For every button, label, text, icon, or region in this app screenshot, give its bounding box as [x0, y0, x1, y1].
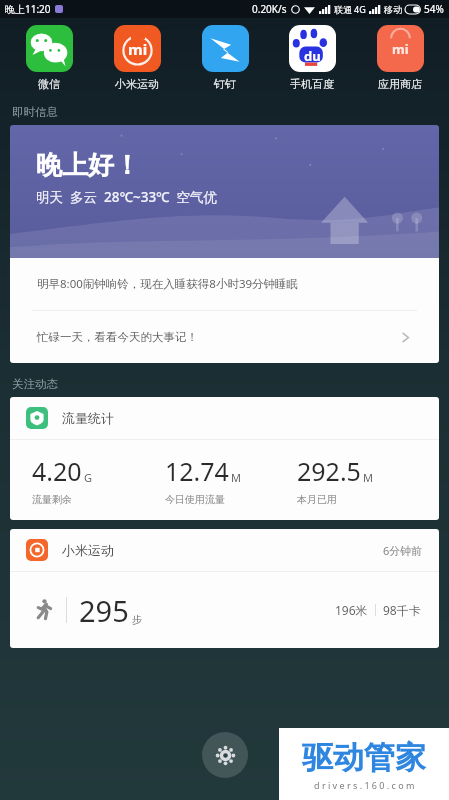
- staticText: 小米运动: [115, 77, 159, 91]
- staticText: 晚上11:20: [5, 2, 51, 16]
- button[interactable]: 晚上好！: [10, 125, 439, 258]
- staticText: 忙碌一天，看看今天的大事记！: [37, 330, 198, 344]
- button[interactable]: 忙碌一天，看看今天的大事记！: [10, 311, 439, 363]
- button[interactable]: 微信: [10, 23, 88, 93]
- staticText: 小米运动: [62, 542, 114, 558]
- button[interactable]: 明早8:00闹钟响铃，现在入睡获得8小时39分钟睡眠: [10, 258, 439, 310]
- button[interactable]: 钉钉: [186, 23, 264, 93]
- staticText: mi: [392, 40, 409, 58]
- staticText: 6分钟前: [383, 543, 423, 558]
- staticText: 今日使用流量: [165, 493, 225, 506]
- staticText: 292.5: [297, 454, 361, 488]
- staticText: 即时信息: [12, 105, 58, 119]
- button[interactable]: 流量统计: [10, 397, 439, 520]
- staticText: 本月已用: [297, 493, 337, 506]
- staticText: 54%: [424, 2, 444, 16]
- staticText: M: [231, 470, 241, 485]
- staticText: 4.20: [32, 454, 82, 488]
- staticText: 流量统计: [62, 410, 114, 426]
- staticText: 明早8:00闹钟响铃，现在入睡获得8小时39分钟睡眠: [37, 276, 299, 292]
- staticText: du: [304, 47, 321, 65]
- staticText: mi: [128, 39, 148, 59]
- staticText: 手机百度: [290, 77, 334, 91]
- button[interactable]: Settings: [202, 732, 248, 778]
- staticText: 晚上好！: [36, 149, 140, 182]
- staticText: 驱动管家: [302, 738, 426, 777]
- button[interactable]: mi: [361, 23, 439, 93]
- staticText: 微信: [38, 77, 60, 91]
- staticText: 明天 多云 28℃~33℃ 空气优: [36, 188, 218, 206]
- staticText: d r i v e r s . 1 6 0 . c o m: [314, 779, 415, 791]
- staticText: 196米: [335, 602, 368, 618]
- staticText: 295: [79, 591, 129, 630]
- staticText: M: [363, 470, 373, 485]
- staticText: 流量剩余: [32, 493, 72, 506]
- staticText: 联通: [334, 4, 352, 15]
- staticText: 钉钉: [214, 77, 236, 91]
- staticText: 关注动态: [12, 377, 58, 391]
- button[interactable]: 小米运动: [10, 529, 439, 648]
- staticText: 98千卡: [383, 602, 421, 618]
- staticText: 应用商店: [378, 77, 422, 91]
- staticText: 0.20K/s: [252, 2, 287, 16]
- staticText: 4G: [354, 3, 366, 15]
- button[interactable]: du: [273, 23, 351, 93]
- staticText: 移动: [384, 4, 402, 15]
- staticText: G: [84, 470, 93, 485]
- button[interactable]: mi: [98, 23, 176, 93]
- staticText: 步: [132, 613, 142, 626]
- staticText: 12.74: [165, 454, 229, 488]
